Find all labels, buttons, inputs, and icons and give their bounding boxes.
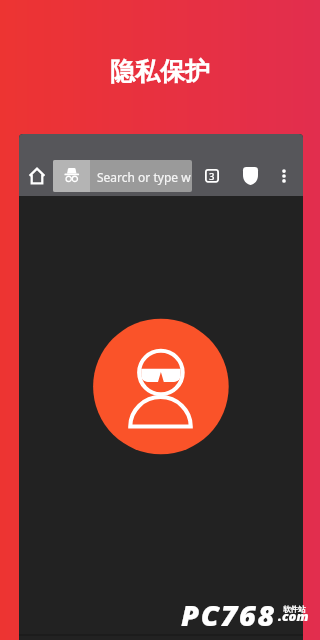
staticText: Search or type w <box>97 169 191 185</box>
button[interactable]: Tabs <box>200 164 224 188</box>
staticText: 软件站 <box>283 605 306 615</box>
button[interactable]: Security <box>243 167 258 185</box>
button[interactable]: Home <box>26 165 48 187</box>
staticText: .com <box>278 607 309 625</box>
staticText: 隐私保护 <box>110 56 210 87</box>
button[interactable]: More options <box>273 165 295 187</box>
staticText: 3 <box>209 170 215 183</box>
staticText: PC768 <box>181 595 276 634</box>
button[interactable]: Search or type w <box>53 160 192 192</box>
